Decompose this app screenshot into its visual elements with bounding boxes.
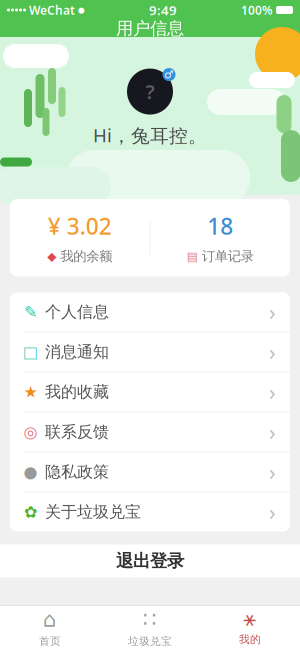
staticText: □	[23, 343, 38, 361]
staticText: 隐私政策	[45, 462, 109, 482]
staticText: 消息通知	[45, 342, 109, 362]
staticText: ✎	[24, 303, 37, 321]
staticText: 退出登录	[116, 550, 184, 572]
button[interactable]: ⚹	[200, 606, 300, 649]
button[interactable]: ✿	[10, 491, 290, 531]
staticText: ✿	[24, 503, 37, 521]
staticText: 垃圾兑宝	[128, 635, 172, 648]
staticText: ◆	[47, 249, 56, 263]
staticText: ¥ 3.02	[48, 211, 112, 241]
staticText: 我的余额	[60, 248, 112, 264]
button[interactable]: ⌂	[0, 606, 100, 649]
button[interactable]: 退出登录	[0, 544, 300, 577]
staticText: 用户信息	[116, 18, 184, 39]
staticText: 订单记录	[202, 248, 254, 264]
staticText: ◎	[23, 423, 37, 441]
button[interactable]: □	[10, 331, 290, 371]
staticText: 18	[207, 211, 233, 241]
staticText: 我的收藏	[45, 382, 109, 402]
staticText: ›	[269, 418, 276, 446]
staticText: ›	[269, 298, 276, 326]
staticText: 个人信息	[45, 302, 109, 322]
staticText: ›	[269, 378, 276, 406]
staticText: ›	[269, 338, 276, 366]
staticText: ●	[78, 5, 85, 15]
button[interactable]: ✎	[10, 292, 290, 331]
staticText: ★	[23, 383, 37, 401]
staticText: 100%	[241, 2, 273, 18]
staticText: ∷	[143, 607, 157, 631]
staticText: ▤	[187, 249, 198, 263]
button[interactable]: ●	[10, 451, 290, 491]
staticText: 联系反馈	[45, 422, 109, 442]
button[interactable]: ∷	[100, 606, 200, 649]
staticText: WeChat	[29, 2, 75, 18]
button[interactable]: ◎	[10, 411, 290, 451]
staticText: ⌂	[43, 607, 57, 631]
staticText: ⚹	[243, 609, 256, 630]
button[interactable]: ¥ 3.02	[10, 199, 149, 276]
staticText: ›	[269, 458, 276, 486]
staticText: ?	[145, 78, 154, 105]
staticText: 我的	[239, 633, 261, 646]
staticText: 关于垃圾兑宝	[45, 502, 141, 522]
button[interactable]: 18	[150, 199, 290, 276]
staticText: ›	[269, 498, 276, 526]
staticText: 首页	[39, 635, 61, 648]
staticText: Hi，兔耳控。	[93, 123, 207, 147]
button[interactable]: ★	[10, 371, 290, 411]
staticText: 9:49	[149, 1, 177, 19]
staticText: ●	[23, 463, 37, 481]
staticText: ♂	[164, 68, 174, 81]
